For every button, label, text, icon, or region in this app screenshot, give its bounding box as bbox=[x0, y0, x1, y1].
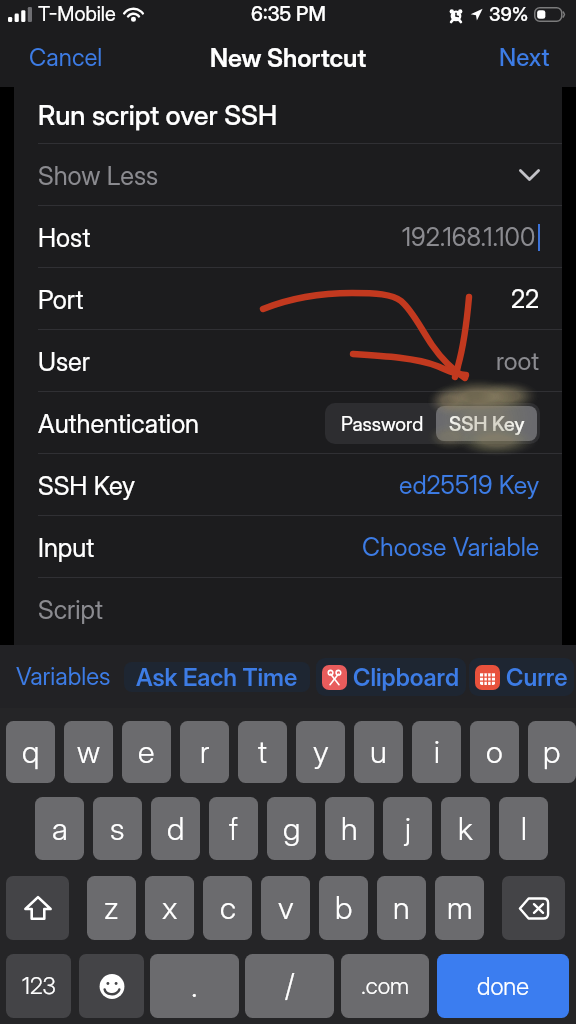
button[interactable]: Show Less bbox=[14, 144, 562, 206]
staticText: User bbox=[38, 346, 90, 377]
button[interactable]: y bbox=[296, 721, 345, 783]
button[interactable]: Password bbox=[328, 406, 436, 441]
staticText: b bbox=[335, 889, 353, 927]
staticText: ed25519 Key bbox=[399, 470, 540, 500]
staticText: 22 bbox=[511, 284, 540, 314]
staticText: 6:35 PM bbox=[251, 2, 326, 26]
staticText: .com bbox=[361, 972, 410, 1000]
button[interactable]: e bbox=[122, 721, 171, 783]
button[interactable]: done bbox=[437, 954, 569, 1018]
button[interactable]: User bbox=[14, 330, 562, 392]
button[interactable]: o bbox=[470, 721, 519, 783]
staticText: y bbox=[313, 733, 329, 771]
button[interactable]: Shift bbox=[6, 876, 69, 940]
button[interactable]: . bbox=[150, 954, 239, 1018]
staticText: v bbox=[278, 889, 294, 927]
staticText: w bbox=[77, 733, 100, 771]
staticText: Script bbox=[38, 594, 103, 625]
button[interactable]: p bbox=[528, 721, 576, 783]
button[interactable]: Curre bbox=[469, 658, 574, 696]
staticText: / bbox=[285, 967, 295, 1005]
button[interactable]: Run script over SSH bbox=[14, 87, 562, 144]
staticText: g bbox=[283, 810, 301, 848]
button[interactable]: c bbox=[203, 876, 252, 940]
button[interactable]: Backspace bbox=[502, 876, 565, 940]
button[interactable]: .com bbox=[341, 954, 429, 1018]
button[interactable]: i bbox=[412, 721, 461, 783]
staticText: x bbox=[162, 889, 178, 927]
button[interactable]: f bbox=[209, 797, 258, 860]
button[interactable]: v bbox=[261, 876, 310, 940]
staticText: a bbox=[52, 810, 68, 848]
staticText: m bbox=[447, 889, 473, 927]
staticText: d bbox=[167, 810, 185, 848]
button[interactable]: Emoji keyboard bbox=[79, 954, 144, 1018]
button[interactable]: 123 bbox=[6, 954, 71, 1018]
staticText: s bbox=[110, 810, 125, 848]
button[interactable]: q bbox=[6, 721, 55, 783]
button[interactable]: z bbox=[87, 876, 136, 940]
staticText: 192.168.1.100 bbox=[402, 222, 536, 252]
button[interactable]: Ask Each Time bbox=[124, 662, 310, 692]
button[interactable]: l bbox=[499, 797, 548, 860]
staticText: l bbox=[521, 810, 527, 848]
staticText: q bbox=[22, 733, 40, 771]
button[interactable]: Clipboard bbox=[316, 658, 466, 696]
staticText: root bbox=[496, 346, 540, 376]
button[interactable]: h bbox=[325, 797, 374, 860]
staticText: New Shortcut bbox=[210, 43, 367, 73]
staticText: Authentication bbox=[38, 408, 200, 439]
staticText: Clipboard bbox=[353, 663, 460, 692]
button[interactable]: n bbox=[377, 876, 426, 940]
staticText: Curre bbox=[506, 663, 568, 692]
button[interactable]: Input bbox=[14, 516, 562, 578]
button[interactable]: x bbox=[145, 876, 194, 940]
staticText: Show Less bbox=[38, 160, 159, 191]
button[interactable]: j bbox=[383, 797, 432, 860]
button[interactable]: Port bbox=[14, 268, 562, 330]
button[interactable]: u bbox=[354, 721, 403, 783]
button[interactable]: Authentication bbox=[14, 392, 562, 454]
staticText: Port bbox=[38, 284, 84, 315]
button[interactable]: s bbox=[93, 797, 142, 860]
button[interactable]: m bbox=[435, 876, 484, 940]
button[interactable]: / bbox=[245, 954, 334, 1018]
staticText: t bbox=[258, 733, 267, 771]
button[interactable]: SSH Key bbox=[14, 454, 562, 516]
staticText: f bbox=[229, 810, 238, 848]
button[interactable]: Next bbox=[481, 28, 576, 87]
staticText: Input bbox=[38, 532, 95, 563]
button[interactable]: k bbox=[441, 797, 490, 860]
staticText: e bbox=[138, 733, 155, 771]
button[interactable]: Variables bbox=[16, 656, 111, 697]
staticText: c bbox=[220, 889, 236, 927]
staticText: p bbox=[543, 733, 561, 771]
button[interactable]: g bbox=[267, 797, 316, 860]
staticText: Ask Each Time bbox=[136, 663, 298, 692]
staticText: Host bbox=[38, 222, 91, 253]
staticText: r bbox=[200, 733, 210, 771]
button[interactable]: b bbox=[319, 876, 368, 940]
staticText: . bbox=[191, 967, 198, 1005]
button[interactable]: w bbox=[64, 721, 113, 783]
staticText: SSH Key bbox=[449, 412, 525, 436]
staticText: j bbox=[405, 810, 411, 848]
staticText: z bbox=[104, 889, 119, 927]
button[interactable]: Script bbox=[14, 578, 562, 640]
button[interactable]: Host bbox=[14, 206, 562, 268]
staticText: i bbox=[434, 733, 440, 771]
button[interactable]: a bbox=[35, 797, 84, 860]
button[interactable]: Cancel bbox=[0, 28, 121, 87]
staticText: Choose Variable bbox=[362, 532, 540, 562]
staticText: 39% bbox=[489, 3, 529, 26]
staticText: k bbox=[458, 810, 473, 848]
staticText: 123 bbox=[22, 972, 56, 1000]
staticText: n bbox=[393, 889, 410, 927]
button[interactable]: t bbox=[238, 721, 287, 783]
staticText: Password bbox=[341, 412, 424, 436]
button[interactable]: d bbox=[151, 797, 200, 860]
staticText: u bbox=[370, 733, 387, 771]
staticText: Run script over SSH bbox=[38, 99, 278, 132]
button[interactable]: SSH Key bbox=[436, 406, 537, 441]
button[interactable]: r bbox=[180, 721, 229, 783]
